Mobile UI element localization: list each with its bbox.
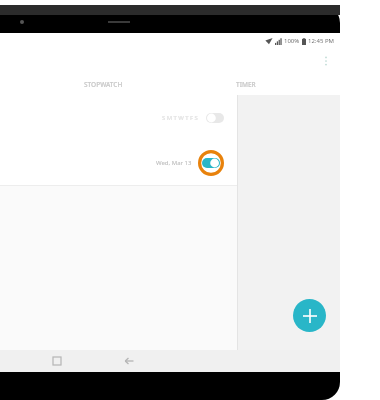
button[interactable]: Alarm off bbox=[206, 113, 224, 123]
staticText: 100% bbox=[284, 37, 300, 45]
button[interactable]: TIMER bbox=[236, 80, 256, 89]
button[interactable]: Add alarm bbox=[293, 299, 326, 332]
staticText: SMTWTFS bbox=[162, 114, 200, 122]
button[interactable]: Recents bbox=[48, 352, 66, 370]
staticText: 12:45 PM bbox=[308, 37, 334, 45]
button[interactable]: STOPWATCH bbox=[84, 80, 123, 89]
button[interactable]: Alarm on bbox=[202, 158, 220, 168]
button[interactable]: Wed, Mar 13 bbox=[0, 140, 237, 185]
button[interactable]: More options bbox=[316, 51, 336, 71]
button[interactable]: Back bbox=[120, 352, 138, 370]
staticText: Wed, Mar 13 bbox=[156, 159, 192, 167]
